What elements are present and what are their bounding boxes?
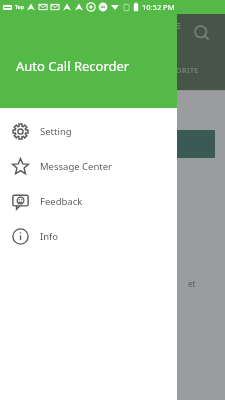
button[interactable]: Info [0, 219, 177, 254]
staticText: ORITE [176, 66, 199, 76]
button[interactable]: Search [191, 22, 213, 44]
button[interactable]: Setting [0, 114, 177, 149]
staticText: Top [15, 4, 24, 11]
staticText: Message Center [40, 160, 113, 173]
staticText: Info [40, 230, 59, 243]
staticText: et [188, 278, 196, 289]
staticText: Setting [40, 125, 72, 138]
button[interactable]: Message Center [0, 149, 177, 184]
staticText: Feedback [40, 195, 83, 208]
staticText: ≡ [171, 18, 182, 33]
button[interactable]: Feedback [0, 184, 177, 219]
staticText: Auto Call Recorder [16, 57, 130, 75]
staticText: 10:52 PM [142, 2, 175, 12]
